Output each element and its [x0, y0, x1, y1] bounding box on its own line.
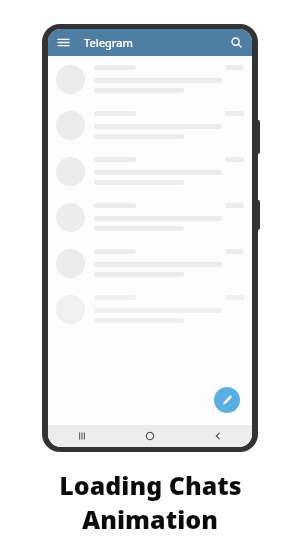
button[interactable]: Home [116, 425, 184, 447]
button[interactable]: New message [214, 387, 240, 413]
button[interactable] [48, 148, 252, 194]
button[interactable] [48, 194, 252, 240]
button[interactable] [48, 286, 252, 332]
button[interactable] [48, 102, 252, 148]
button[interactable]: Open navigation menu [54, 33, 73, 52]
button[interactable]: Back [184, 425, 252, 447]
staticText: Animation [82, 502, 218, 536]
button[interactable] [48, 240, 252, 286]
button[interactable]: Search [227, 33, 246, 52]
staticText: Telegram [84, 35, 133, 50]
button[interactable]: Recent apps [48, 425, 116, 447]
staticText: Loading Chats [59, 468, 242, 502]
button[interactable] [48, 56, 252, 102]
